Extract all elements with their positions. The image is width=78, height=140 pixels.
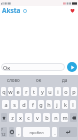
button[interactable]: Refresh xyxy=(22,8,27,13)
button[interactable]: j xyxy=(54,100,60,109)
staticText: n xyxy=(54,114,58,121)
staticText: p xyxy=(72,88,76,95)
button[interactable]: . xyxy=(52,127,57,137)
staticText: c xyxy=(27,114,30,121)
button[interactable]: p xyxy=(71,87,77,96)
staticText: v xyxy=(36,114,39,121)
staticText: q xyxy=(2,88,6,95)
button[interactable]: Favorite xyxy=(69,7,75,13)
staticText: f xyxy=(32,101,34,108)
button[interactable]: Send xyxy=(67,62,77,72)
button[interactable]: Enter xyxy=(59,127,77,137)
staticText: h xyxy=(47,101,51,108)
button[interactable]: ок xyxy=(26,75,52,85)
staticText: пробел xyxy=(29,130,44,135)
staticText: l xyxy=(72,101,74,108)
staticText: ?123 xyxy=(1,127,7,137)
button[interactable]: u xyxy=(47,87,53,96)
button[interactable]: да xyxy=(52,75,78,85)
button[interactable]: d xyxy=(20,100,27,109)
button[interactable]: h xyxy=(46,100,52,109)
staticText: u xyxy=(48,88,52,95)
button[interactable]: e xyxy=(15,87,21,96)
staticText: Aksta xyxy=(2,6,21,14)
staticText: o xyxy=(64,88,68,95)
button[interactable]: Ок xyxy=(1,63,65,71)
staticText: m xyxy=(62,114,68,121)
button[interactable]: Emoji xyxy=(9,127,14,137)
button[interactable]: k xyxy=(62,100,68,109)
button[interactable]: n xyxy=(52,113,59,122)
button[interactable]: пробел xyxy=(23,127,50,137)
button[interactable]: Shift xyxy=(1,113,7,122)
button[interactable]: m xyxy=(61,113,68,122)
button[interactable]: y xyxy=(39,87,45,96)
button[interactable]: l xyxy=(70,100,76,109)
button[interactable]: q xyxy=(1,87,6,96)
button[interactable]: a xyxy=(2,100,9,109)
staticText: . xyxy=(54,129,56,136)
staticText: , xyxy=(18,129,20,136)
staticText: x xyxy=(19,114,22,121)
staticText: z xyxy=(11,114,14,121)
button[interactable]: v xyxy=(34,113,41,122)
staticText: b xyxy=(45,114,49,121)
button[interactable]: c xyxy=(25,113,32,122)
button[interactable]: b xyxy=(43,113,50,122)
button[interactable]: t xyxy=(31,87,37,96)
button[interactable]: Symbols xyxy=(1,127,7,137)
staticText: Ок xyxy=(3,64,11,71)
button[interactable]: r xyxy=(23,87,29,96)
button[interactable]: z xyxy=(9,113,15,122)
staticText: r xyxy=(25,88,28,95)
staticText: d xyxy=(22,101,26,108)
button[interactable]: w xyxy=(8,87,13,96)
staticText: слово xyxy=(7,77,20,83)
staticText: k xyxy=(64,101,67,108)
button[interactable]: o xyxy=(63,87,69,96)
staticText: y xyxy=(41,88,44,95)
staticText: j xyxy=(56,101,58,108)
staticText: w xyxy=(8,88,13,95)
staticText: i xyxy=(57,88,59,95)
staticText: e xyxy=(16,88,20,95)
button[interactable]: Backspace xyxy=(70,113,77,122)
button[interactable]: i xyxy=(55,87,61,96)
staticText: a xyxy=(4,101,8,108)
button[interactable]: s xyxy=(11,100,18,109)
staticText: s xyxy=(13,101,16,108)
staticText: ок xyxy=(36,77,42,83)
button[interactable]: слово xyxy=(0,75,26,85)
button[interactable]: f xyxy=(29,100,36,109)
button[interactable]: x xyxy=(17,113,23,122)
button[interactable]: g xyxy=(38,100,44,109)
staticText: да xyxy=(62,77,68,83)
staticText: t xyxy=(33,88,35,95)
staticText: g xyxy=(39,101,43,108)
button[interactable]: , xyxy=(16,127,21,137)
